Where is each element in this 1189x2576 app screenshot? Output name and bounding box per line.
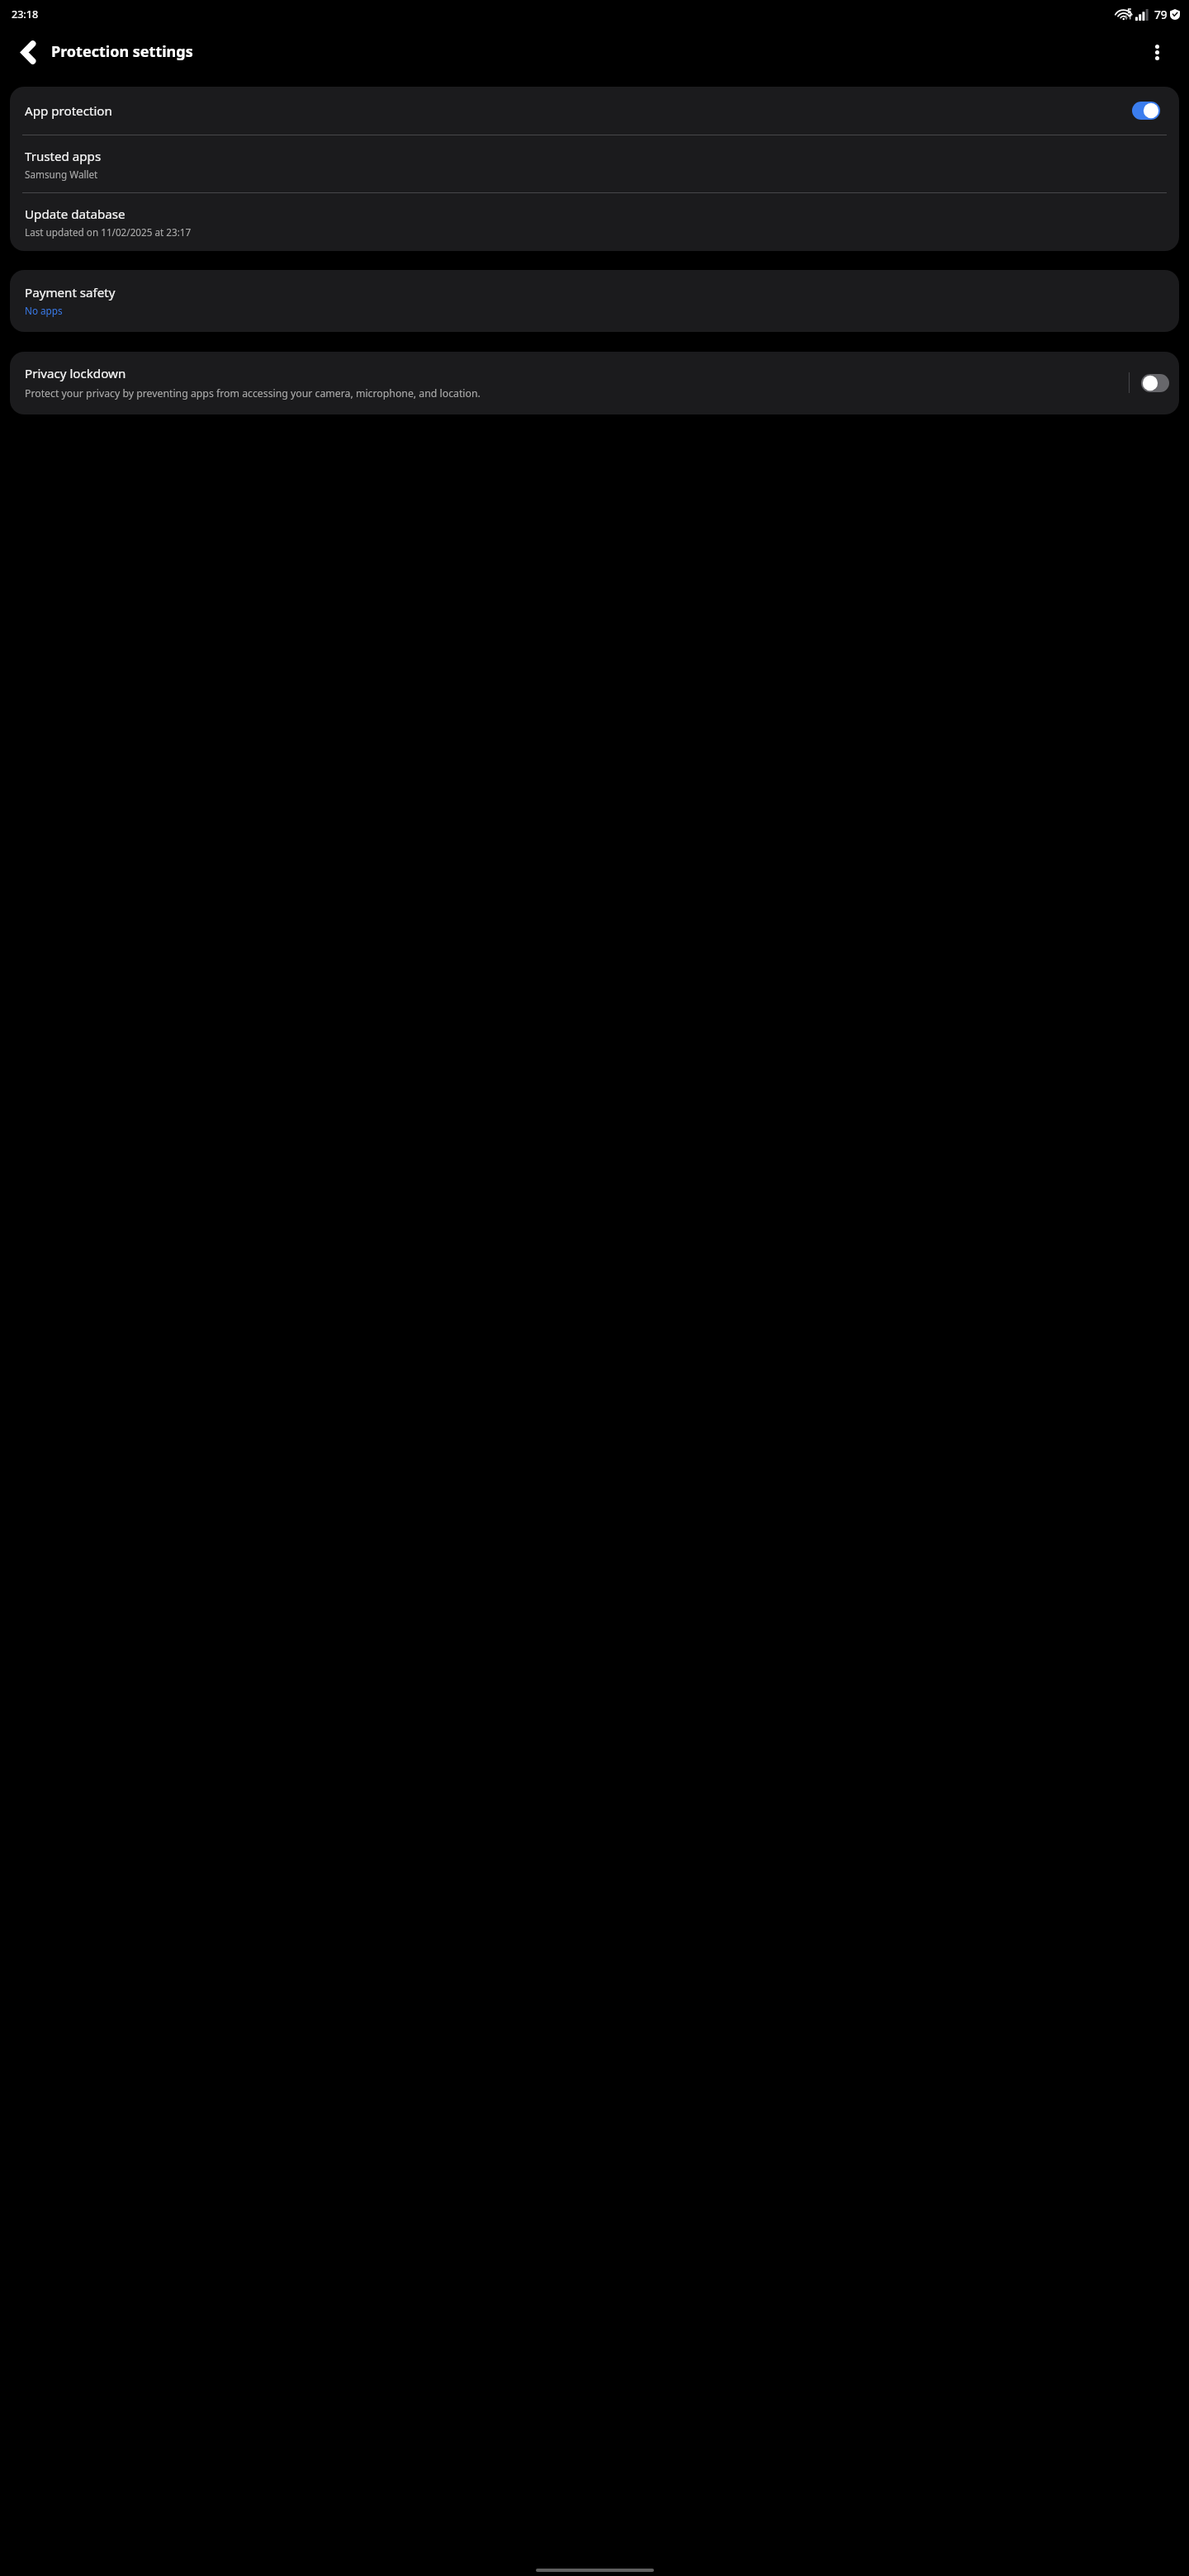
button[interactable]: App protection, on — [1132, 102, 1160, 120]
button[interactable]: Update database — [10, 193, 1179, 251]
staticText: Payment safety — [25, 284, 116, 301]
staticText: Last updated on 11/02/2025 at 23:17 — [25, 225, 192, 239]
button[interactable]: Privacy lockdown, off — [1141, 374, 1169, 392]
staticText: Update database — [25, 206, 126, 223]
button[interactable]: Privacy lockdown toggle — [1130, 374, 1179, 392]
staticText: App protection — [25, 102, 1132, 120]
staticText: No apps — [25, 304, 63, 317]
staticText: 23:18 — [12, 7, 39, 21]
staticText: Protection settings — [51, 41, 193, 62]
button[interactable]: App protection — [10, 87, 1179, 135]
staticText: Protect your privacy by preventing apps … — [25, 386, 481, 400]
button[interactable]: Back — [15, 39, 41, 65]
staticText: Trusted apps — [25, 148, 102, 165]
staticText: Samsung Wallet — [25, 168, 98, 181]
button[interactable]: More options — [1144, 39, 1170, 65]
staticText: Privacy lockdown — [25, 365, 126, 382]
button[interactable]: Trusted apps — [10, 135, 1179, 192]
staticText: 79 — [1154, 7, 1168, 22]
button[interactable]: Privacy lockdown — [10, 352, 1179, 414]
button[interactable]: Payment safety — [10, 270, 1179, 332]
